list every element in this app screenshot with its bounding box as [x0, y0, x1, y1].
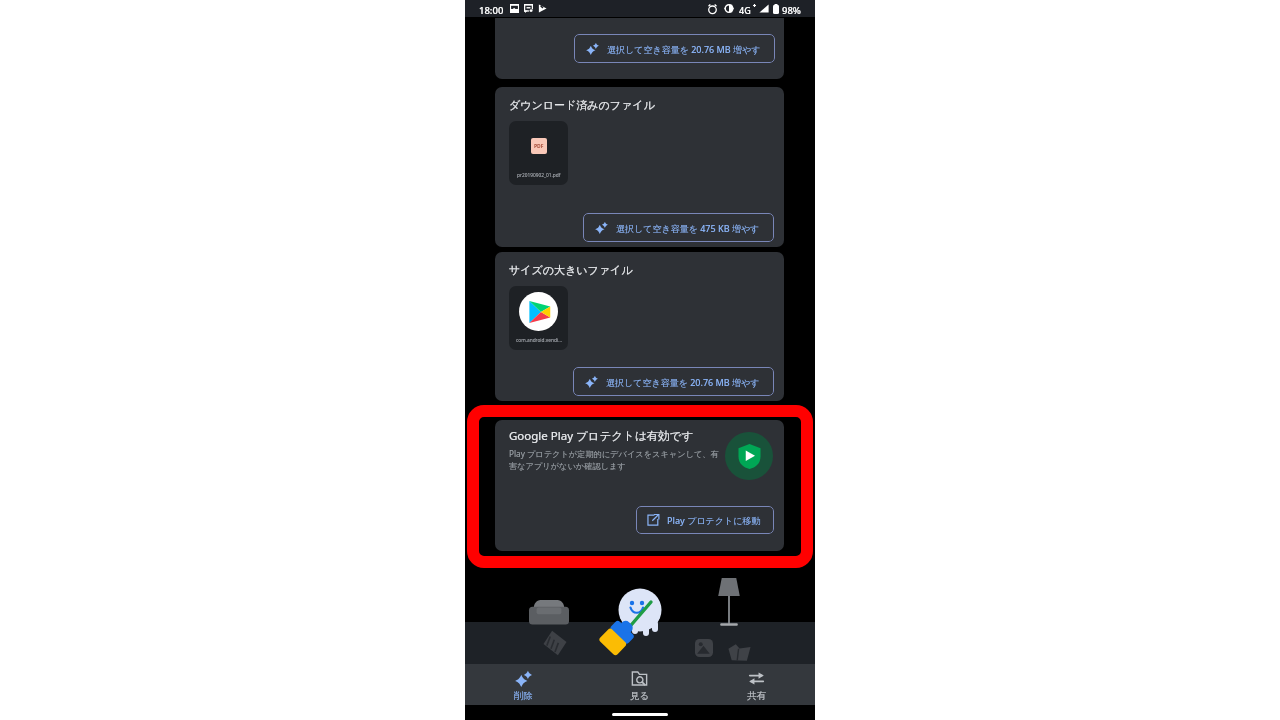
button[interactable]: Play プロテクトに移動: [636, 506, 774, 534]
staticText: 共有: [747, 690, 766, 702]
staticText: 選択して空き容量を 20.76 MB 増やす: [606, 376, 760, 388]
button[interactable]: com.android.vendi...: [509, 286, 568, 350]
staticText: 削除: [514, 690, 533, 702]
staticText: 4G: [739, 4, 751, 16]
staticText: 選択して空き容量を 475 KB 増やす: [616, 222, 760, 234]
button[interactable]: 選択して空き容量を 20.76 MB 増やす: [573, 367, 774, 396]
staticText: ダウンロード済みのファイル: [509, 98, 655, 112]
staticText: サイズの大きいファイル: [509, 263, 633, 277]
button[interactable]: 共有: [698, 664, 815, 705]
staticText: 18:00: [479, 4, 504, 17]
staticText: 選択して空き容量を 20.76 MB 増やす: [607, 43, 761, 55]
button[interactable]: 選択して空き容量を 20.76 MB 増やす: [574, 34, 775, 63]
button[interactable]: 選択して空き容量を 475 KB 増やす: [583, 213, 774, 242]
button[interactable]: pr20190902_01.pdf: [509, 121, 568, 185]
staticText: PDF: [534, 143, 544, 150]
staticText: Play プロテクトに移動: [667, 514, 761, 526]
staticText: Google Play プロテクトは有効です: [509, 428, 694, 444]
button[interactable]: 見る: [581, 664, 698, 705]
staticText: Play プロテクトが定期的にデバイスをスキャンして、有害なアプリがないか確認し…: [509, 448, 720, 471]
staticText: pr20190902_01.pdf: [517, 172, 561, 179]
staticText: 見る: [630, 690, 650, 702]
button[interactable]: 削除: [465, 664, 581, 705]
staticText: com.android.vendi...: [516, 337, 562, 344]
staticText: 98%: [782, 4, 801, 17]
